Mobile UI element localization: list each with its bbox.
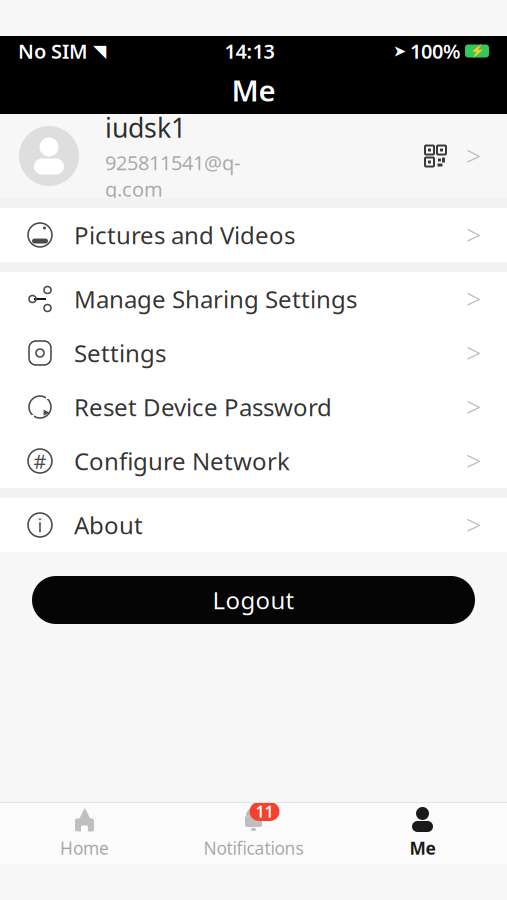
button[interactable]: Manage Sharing Settings xyxy=(0,272,507,326)
staticText: > xyxy=(466,443,481,479)
staticText: ➤ xyxy=(393,42,406,60)
staticText: ⚡ xyxy=(469,44,484,58)
staticText: Settings xyxy=(74,337,166,369)
staticText: Logout xyxy=(212,584,294,616)
staticText: > xyxy=(466,217,481,253)
button[interactable]: Pictures and Videos xyxy=(0,208,507,262)
staticText: 100% xyxy=(410,38,461,64)
staticText: > xyxy=(466,335,481,371)
button[interactable]: Settings xyxy=(0,326,507,380)
staticText: Me xyxy=(231,70,275,109)
button[interactable]: # xyxy=(0,434,507,488)
staticText: Configure Network xyxy=(74,445,290,477)
button[interactable]: Me xyxy=(338,805,507,861)
staticText: > xyxy=(466,281,481,317)
button[interactable]: 11 xyxy=(169,805,338,861)
button[interactable]: ▲ xyxy=(0,805,169,861)
staticText: Manage Sharing Settings xyxy=(74,283,357,315)
staticText: No SIM xyxy=(18,38,88,64)
staticText: 11 xyxy=(255,801,273,822)
staticText: # xyxy=(33,448,46,474)
staticText: Me xyxy=(409,836,435,859)
button[interactable]: ▸ xyxy=(0,380,507,434)
staticText: i xyxy=(37,513,42,537)
button[interactable]: Logout xyxy=(32,576,475,624)
staticText: About xyxy=(74,509,143,541)
staticText: > xyxy=(466,138,481,174)
staticText: 925811541@qq.com xyxy=(105,149,240,202)
staticText: ◥ xyxy=(93,41,106,61)
staticText: 14:13 xyxy=(224,38,274,64)
staticText: Pictures and Videos xyxy=(74,219,295,251)
staticText: Reset Device Password xyxy=(74,391,332,423)
staticText: ▸ xyxy=(43,405,49,418)
staticText: > xyxy=(466,507,481,543)
staticText: iudsk1 xyxy=(105,110,186,145)
staticText: > xyxy=(466,389,481,425)
staticText: Notifications xyxy=(203,836,303,859)
staticText: ▲ xyxy=(75,801,93,829)
button[interactable]: i xyxy=(0,498,507,552)
button[interactable]: iudsk1 xyxy=(0,114,507,198)
staticText: Home xyxy=(60,836,109,859)
